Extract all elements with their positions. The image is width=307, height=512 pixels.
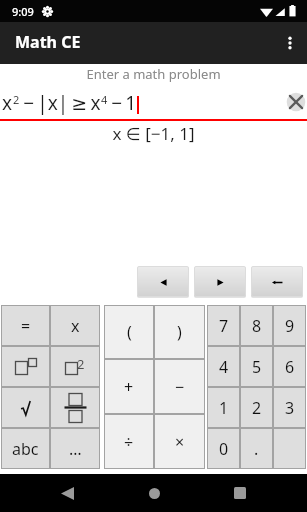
button[interactable] [273,428,306,469]
button[interactable]: 8 [240,305,273,346]
staticText: 8 [252,315,262,337]
button[interactable]: 2 [50,346,100,387]
staticText: 2 [252,397,262,419]
staticText: × [175,431,185,453]
staticText: … [69,438,82,460]
staticText: + [124,376,134,398]
staticText: x [71,315,80,337]
button[interactable]: Recents [220,474,260,512]
button[interactable]: Cursor right [194,266,246,297]
staticText: 4 [101,92,108,107]
staticText: 1 [219,397,229,419]
staticText: 5 [252,356,262,378]
staticText: 0 [219,438,229,460]
staticText: 4 [219,356,229,378]
button[interactable] [1,346,50,387]
staticText: = [21,315,31,337]
button[interactable] [50,387,100,428]
staticText: 2 [13,92,20,107]
staticText: 2 [77,355,85,372]
button[interactable]: 7 [207,305,240,346]
staticText: 3 [285,397,295,419]
staticText: ÷ [124,431,134,453]
button[interactable]: ) [154,305,205,359]
button[interactable]: Back [47,474,87,512]
button[interactable]: x [50,305,100,346]
staticText: − [175,376,185,398]
button[interactable]: ÷ [104,414,154,469]
button[interactable]: 6 [273,346,306,387]
button[interactable] [1,387,50,428]
staticText: Math CE [15,31,81,53]
button[interactable]: More options [273,22,307,64]
button[interactable]: ( [104,305,154,359]
staticText: x ∈ [−1, 1] [0,122,307,145]
button[interactable]: 1 [207,387,240,428]
button[interactable]: = [1,305,50,346]
button[interactable]: Backspace [251,266,303,297]
staticText: x [2,90,13,116]
staticText: abc [12,438,39,460]
staticText: Enter a math problem [0,65,307,83]
staticText: . [254,438,259,460]
button[interactable]: abc [1,428,50,469]
button[interactable]: 9 [273,305,306,346]
button[interactable]: × [154,414,205,469]
button[interactable]: + [104,359,154,414]
button[interactable]: 0 [207,428,240,469]
button[interactable]: − [154,359,205,414]
staticText: 9:09 [12,4,34,19]
staticText: 9 [285,315,295,337]
staticText: ) [177,321,182,343]
staticText: 7 [219,315,229,337]
button[interactable]: 4 [207,346,240,387]
button[interactable]: . [240,428,273,469]
staticText: 6 [285,356,295,378]
button[interactable]: … [50,428,100,469]
staticText: − 1 [108,90,137,116]
button[interactable]: Home [134,474,174,512]
button[interactable]: Clear [283,89,307,115]
button[interactable]: Cursor left [137,266,189,297]
button[interactable]: 3 [273,387,306,428]
button[interactable]: 2 [240,387,273,428]
staticText: − |x| ≥ x [20,90,101,116]
staticText: ( [127,321,132,343]
button[interactable]: 5 [240,346,273,387]
